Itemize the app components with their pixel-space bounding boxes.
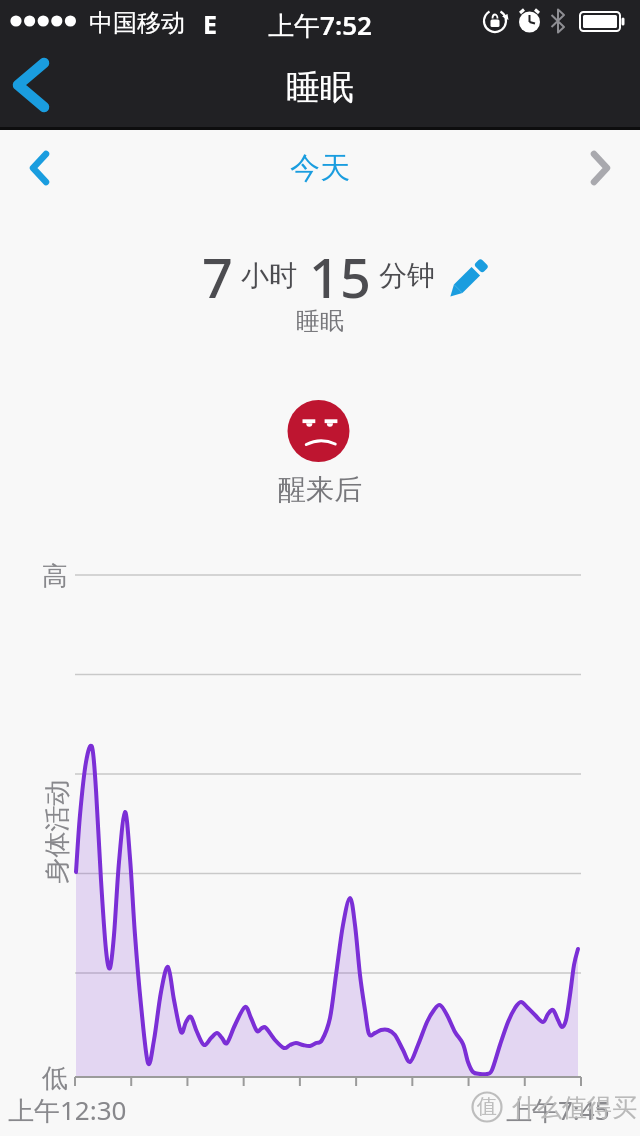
staticText: 上午7:45	[506, 1092, 610, 1128]
staticText: 低	[42, 1062, 68, 1095]
button[interactable]	[16, 138, 64, 198]
staticText: 身体活动	[40, 778, 73, 884]
staticText: 小时	[241, 258, 297, 293]
staticText: 上午7:52	[0, 7, 640, 43]
button[interactable]	[287, 399, 351, 463]
staticText: 睡眠	[0, 306, 640, 336]
button[interactable]	[6, 54, 66, 118]
staticText: 中国移动	[89, 8, 185, 38]
button[interactable]: 7	[24, 240, 640, 300]
staticText: 值	[477, 1094, 497, 1119]
staticText: 醒来后	[0, 472, 640, 507]
staticText: E	[203, 7, 218, 41]
button[interactable]: 今天	[0, 149, 640, 187]
button[interactable]	[576, 138, 624, 198]
staticText: 上午12:30	[8, 1092, 127, 1128]
staticText: 分钟	[379, 258, 435, 293]
staticText: 7	[202, 240, 233, 300]
staticText: 睡眠	[0, 66, 640, 109]
staticText: 15	[309, 240, 371, 300]
staticText: 什么值得买	[512, 1092, 637, 1123]
staticText: 高	[42, 560, 68, 593]
